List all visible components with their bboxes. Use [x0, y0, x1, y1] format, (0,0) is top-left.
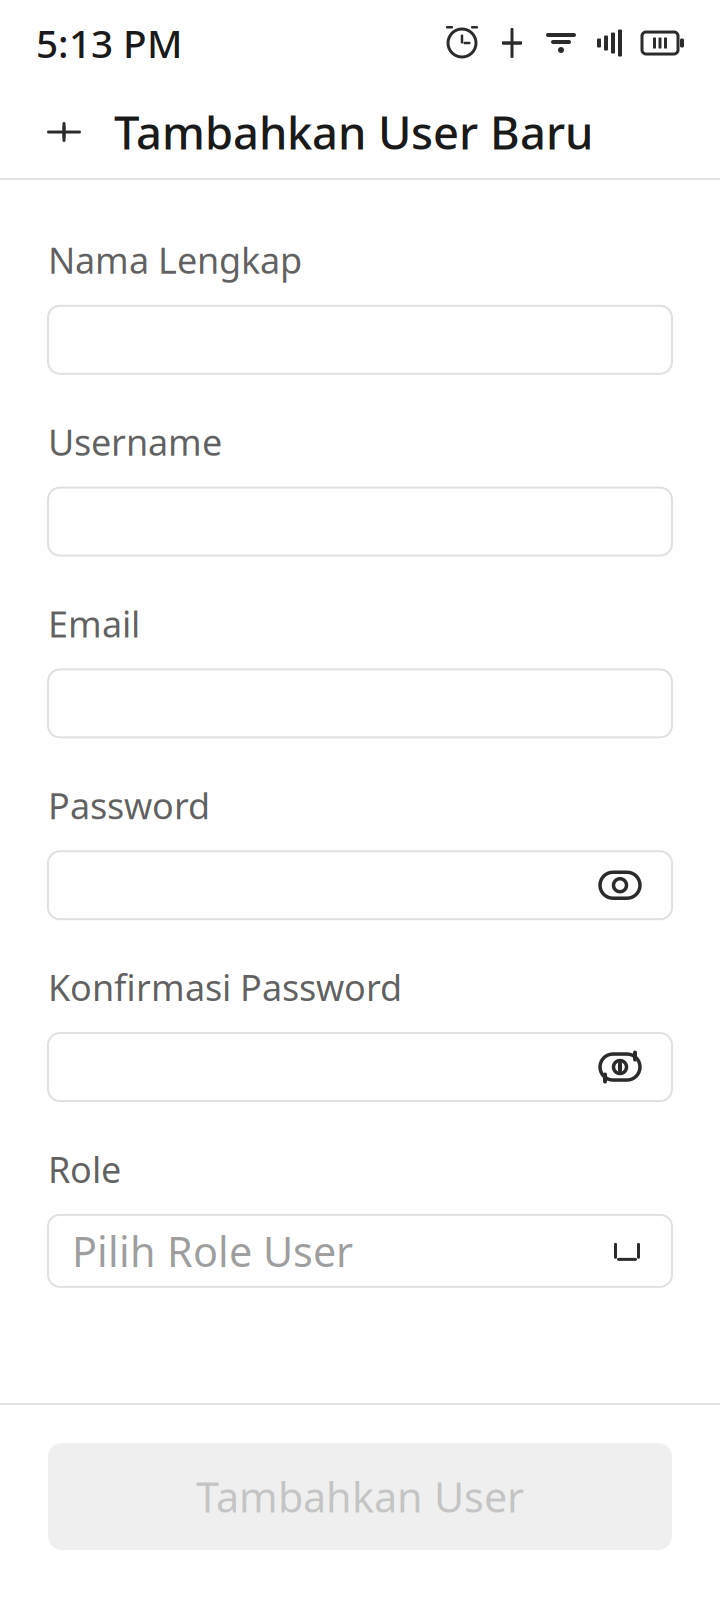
staticText: 5:13 PM: [36, 17, 182, 69]
staticText: Tambahkan User: [196, 1469, 524, 1524]
button[interactable]: Pilih Role User: [48, 1215, 672, 1287]
button[interactable]: Back: [32, 100, 96, 164]
button[interactable]: [48, 851, 672, 919]
staticText: Password: [48, 781, 210, 829]
staticText: Role: [48, 1145, 121, 1193]
button[interactable]: [48, 488, 672, 556]
staticText: Pilih Role User: [72, 1223, 353, 1278]
staticText: Username: [48, 418, 222, 466]
button[interactable]: Tambahkan User: [48, 1443, 672, 1550]
staticText: Nama Lengkap: [48, 236, 302, 284]
staticText: Tambahkan User Baru: [114, 102, 593, 162]
staticText: Email: [48, 600, 140, 647]
staticText: Konfirmasi Password: [48, 963, 402, 1011]
button[interactable]: [48, 306, 672, 374]
button[interactable]: [48, 1033, 672, 1101]
button[interactable]: [48, 669, 672, 737]
